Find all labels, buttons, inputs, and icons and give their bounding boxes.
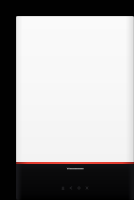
- button[interactable]: Viessmann: [16, 16, 134, 200]
- button[interactable]: Back: [69, 186, 73, 190]
- button[interactable]: Settings: [85, 186, 89, 190]
- button[interactable]: Viessmann: [67, 167, 84, 171]
- button[interactable]: Confirm: [77, 186, 81, 190]
- button[interactable]: Menu: [61, 186, 65, 190]
